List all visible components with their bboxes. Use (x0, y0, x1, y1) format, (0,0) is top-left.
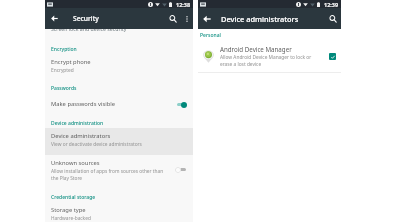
button[interactable]: More options (181, 8, 193, 29)
button[interactable]: Back (198, 8, 215, 29)
button[interactable]: Back (45, 8, 64, 29)
staticText: Allow Android Device Manager to lock or … (220, 54, 318, 67)
button[interactable]: Storage type (45, 206, 193, 222)
staticText: 12:39 (324, 1, 339, 8)
button[interactable]: Search (325, 8, 341, 29)
staticText: Security (73, 14, 99, 23)
button[interactable]: Encrypt phone (45, 58, 193, 75)
staticText: View or deactivate device administrators (51, 141, 142, 148)
staticText: Encrypted (51, 67, 74, 74)
button[interactable]: Android Device Manager (198, 43, 341, 69)
staticText: Encryption (51, 46, 77, 53)
staticText: Device administrators (221, 14, 299, 24)
button[interactable]: Unknown sources (45, 159, 193, 183)
staticText: Hardware-backed (51, 215, 91, 222)
button[interactable]: Device administrators (45, 132, 193, 150)
staticText: Device administrators (51, 132, 111, 140)
button[interactable]: Enabled (329, 53, 336, 60)
staticText: Passwords (51, 85, 77, 92)
staticText: Device administration (51, 120, 104, 127)
staticText: 12:38 (176, 1, 191, 8)
staticText: Encrypt phone (51, 58, 91, 66)
button[interactable]: Search (165, 8, 181, 29)
staticText: Android Device Manager (220, 45, 292, 53)
staticText: Screen lock and device security (51, 25, 127, 32)
staticText: Unknown sources (51, 159, 100, 167)
staticText: Credential storage (51, 194, 96, 201)
button[interactable]: Make passwords visible (45, 98, 193, 110)
staticText: Personal (200, 32, 221, 39)
staticText: Make passwords visible (51, 100, 115, 108)
staticText: Storage type (51, 206, 86, 214)
staticText: Allow installation of apps from sources … (51, 168, 169, 181)
